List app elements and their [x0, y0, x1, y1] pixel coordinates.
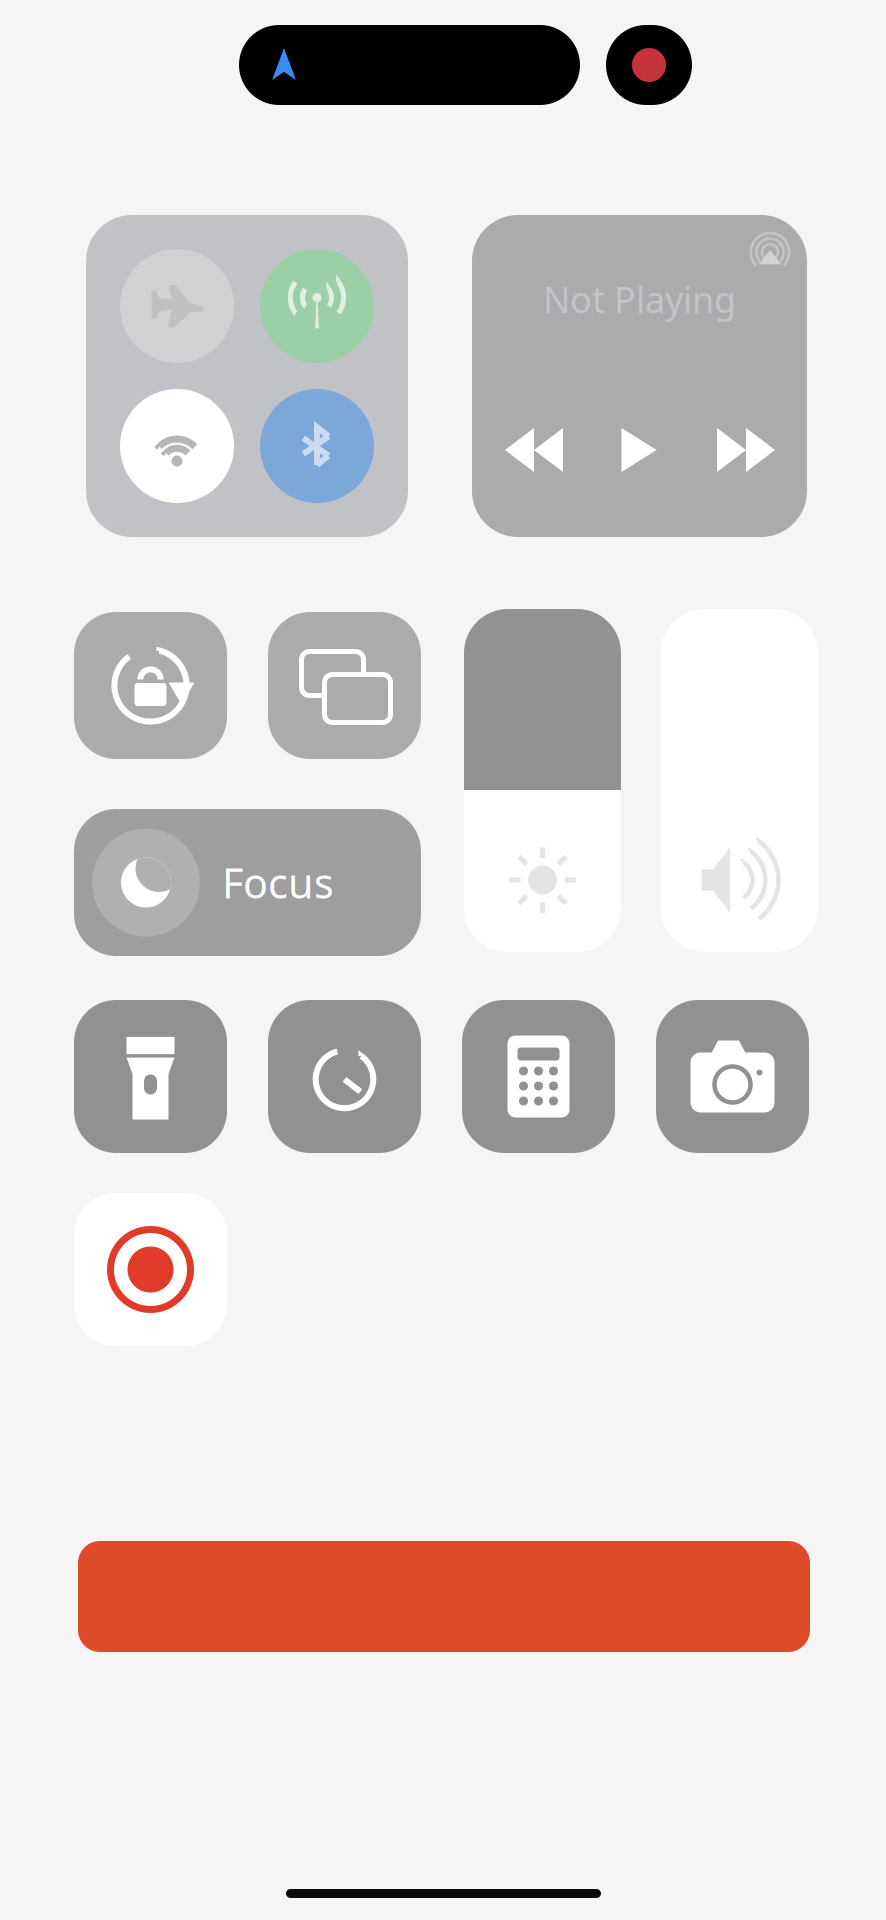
button[interactable]: Camera	[656, 1000, 809, 1153]
button[interactable]: Brightness	[464, 609, 621, 952]
button[interactable]: AirPlay	[750, 227, 790, 267]
button[interactable]: Flashlight	[74, 1000, 227, 1153]
button[interactable]: Timer	[268, 1000, 421, 1153]
button[interactable]: Focus	[74, 809, 421, 956]
button[interactable]: Fast forward	[712, 420, 780, 480]
button[interactable]: Volume	[661, 609, 818, 952]
button[interactable]: Screen recording	[606, 25, 692, 105]
staticText: Not Playing	[543, 275, 736, 323]
button[interactable]: Bluetooth	[260, 389, 374, 503]
button[interactable]: Screen Recording	[74, 1193, 227, 1346]
button[interactable]: Location active	[239, 25, 580, 105]
button[interactable]: Cellular Data	[260, 249, 374, 363]
button[interactable]: Calculator	[462, 1000, 615, 1153]
button[interactable]: Wi-Fi	[120, 389, 234, 503]
staticText: Focus	[222, 855, 334, 910]
button[interactable]: Rotation Lock	[74, 612, 227, 759]
button[interactable]: Screen Mirroring	[268, 612, 421, 759]
button[interactable]: Airplane Mode	[120, 249, 234, 363]
button[interactable]: Rewind	[500, 420, 568, 480]
button[interactable]: Play	[608, 420, 670, 480]
